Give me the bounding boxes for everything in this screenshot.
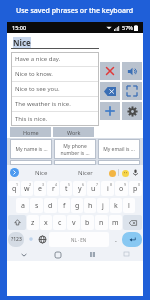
button[interactable]: a xyxy=(16,198,29,213)
button[interactable]: Speak xyxy=(122,62,142,80)
staticText: Work xyxy=(67,129,81,136)
button[interactable]: k xyxy=(110,198,122,213)
staticText: The weather is nice. xyxy=(15,100,71,108)
staticText: v xyxy=(72,218,76,228)
staticText: Nice xyxy=(13,37,31,48)
button[interactable]: z xyxy=(27,215,39,230)
staticText: y xyxy=(78,184,82,194)
button[interactable]: Keyboard layout xyxy=(109,248,143,261)
button[interactable]: Nicer xyxy=(63,165,108,180)
staticText: w xyxy=(24,184,30,194)
button[interactable]: 2 xyxy=(21,181,33,196)
button[interactable]: Home xyxy=(10,127,51,137)
staticText: l xyxy=(128,201,130,211)
staticText: j xyxy=(102,201,104,211)
button[interactable]: Nice xyxy=(19,165,63,180)
button[interactable] xyxy=(10,160,52,165)
staticText: Nice xyxy=(35,169,48,177)
button[interactable]: n xyxy=(95,215,108,230)
staticText: Have a nice day. xyxy=(15,55,61,63)
button[interactable]: Settings xyxy=(122,102,142,120)
staticText: 6 xyxy=(82,182,85,187)
button[interactable]: Enter xyxy=(122,232,142,247)
staticText: a xyxy=(21,201,25,211)
button[interactable]: My email is ... xyxy=(98,139,140,159)
button[interactable]: 3 xyxy=(34,181,46,196)
button[interactable]: 7 xyxy=(87,181,100,196)
button[interactable]: l xyxy=(123,198,135,213)
staticText: p xyxy=(133,184,138,194)
button[interactable]: j xyxy=(97,198,109,213)
button[interactable]: NL · EN xyxy=(49,232,109,247)
staticText: My email is ... xyxy=(103,146,135,153)
button[interactable]: s xyxy=(30,198,43,213)
button[interactable]: Add phrase xyxy=(100,102,120,120)
staticText: 1 xyxy=(16,182,19,187)
button[interactable]: Emoji thumbs up xyxy=(108,169,116,177)
button[interactable]: 5 xyxy=(60,181,72,196)
button[interactable]: Nice xyxy=(11,36,99,48)
button[interactable]: Work xyxy=(53,127,94,137)
button[interactable]: 6 xyxy=(73,181,86,196)
button[interactable]: Nice to see you. xyxy=(11,82,99,96)
staticText: Nice to see you. xyxy=(15,85,60,93)
button[interactable]: 1 xyxy=(8,181,20,196)
staticText: My phone number is ... xyxy=(60,143,90,156)
button[interactable]: Hide keyboard xyxy=(7,248,41,261)
staticText: x xyxy=(44,218,48,228)
staticText: 8 xyxy=(110,182,113,187)
staticText: 57% xyxy=(122,24,133,31)
button[interactable]: Nice to know. xyxy=(11,67,99,81)
button[interactable]: x xyxy=(40,215,52,230)
staticText: m xyxy=(112,218,119,228)
staticText: e xyxy=(38,184,42,194)
button[interactable]: m xyxy=(109,215,122,230)
button[interactable]: h xyxy=(84,198,96,213)
button[interactable]: b xyxy=(81,215,94,230)
button[interactable]: . xyxy=(110,232,121,247)
button[interactable]: 8 xyxy=(101,181,114,196)
staticText: NL · EN xyxy=(71,237,87,243)
staticText: n xyxy=(99,218,104,228)
button[interactable]: My phone number is ... xyxy=(54,139,96,159)
button[interactable]: d xyxy=(44,198,57,213)
staticText: 15:00 xyxy=(12,24,27,31)
staticText: Home xyxy=(23,129,39,136)
staticText: t xyxy=(65,184,68,194)
button[interactable] xyxy=(98,160,140,165)
staticText: 3 xyxy=(42,182,45,187)
button[interactable]: Recents xyxy=(75,248,109,261)
button[interactable] xyxy=(54,160,96,165)
button[interactable]: 9 xyxy=(115,181,128,196)
button[interactable]: The weather is nice. xyxy=(11,97,99,111)
button[interactable]: Clear xyxy=(100,62,120,80)
button[interactable]: Backspace xyxy=(123,215,142,230)
staticText: Use saved phrases or the keyboard xyxy=(16,6,134,16)
button[interactable]: 0 xyxy=(129,181,142,196)
button[interactable]: g xyxy=(71,198,83,213)
button[interactable]: ?123 xyxy=(8,232,24,247)
button[interactable]: Expand toolbar xyxy=(10,168,19,177)
button[interactable]: My name is ... xyxy=(10,139,52,159)
button[interactable]: This is nice. xyxy=(11,112,99,126)
button[interactable]: Emoji xyxy=(121,169,129,177)
staticText: Nice to know. xyxy=(15,70,53,78)
button[interactable]: Change language xyxy=(37,232,48,247)
button[interactable]: Shift xyxy=(8,215,26,230)
button[interactable]: v xyxy=(67,215,80,230)
button[interactable]: Home xyxy=(41,248,75,261)
button[interactable]: Backspace xyxy=(100,82,120,100)
button[interactable]: Settings xyxy=(25,232,36,247)
staticText: z xyxy=(31,218,35,228)
staticText: My name is ... xyxy=(15,146,48,153)
button[interactable]: c xyxy=(53,215,66,230)
button[interactable]: f xyxy=(58,198,70,213)
button[interactable]: Voice input xyxy=(131,168,140,177)
button[interactable]: 4 xyxy=(47,181,59,196)
staticText: c xyxy=(58,218,62,228)
staticText: b xyxy=(85,218,90,228)
staticText: 0 xyxy=(138,182,141,187)
staticText: q xyxy=(12,184,17,194)
button[interactable]: Have a nice day. xyxy=(11,52,99,66)
button[interactable]: Fullscreen xyxy=(122,82,142,100)
